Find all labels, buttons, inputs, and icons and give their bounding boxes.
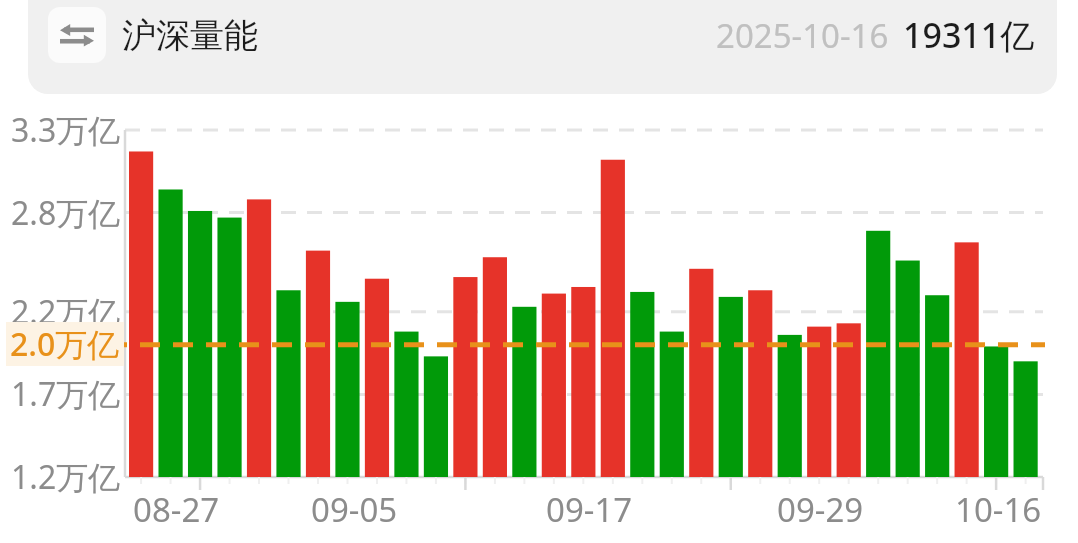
staticText: 19311亿 bbox=[903, 12, 1035, 58]
staticText: 08-27 bbox=[133, 487, 220, 532]
staticText: 2.0万亿 bbox=[10, 322, 120, 366]
staticText: 09-05 bbox=[311, 487, 398, 532]
staticText: 09-29 bbox=[777, 487, 864, 532]
staticText: 沪深量能 bbox=[122, 14, 258, 57]
staticText: 1.7万亿 bbox=[11, 372, 121, 416]
staticText: 2025-10-16 bbox=[716, 13, 889, 58]
staticText: 09-17 bbox=[546, 487, 633, 532]
staticText: 10-16 bbox=[955, 487, 1042, 532]
staticText: 2.2万亿 bbox=[11, 290, 121, 334]
staticText: 3.3万亿 bbox=[11, 108, 121, 152]
button[interactable]: Switch chart bbox=[48, 7, 106, 63]
staticText: 1.2万亿 bbox=[11, 455, 121, 499]
staticText: 2.8万亿 bbox=[11, 191, 121, 235]
button[interactable]: Switch chart bbox=[28, 0, 1057, 94]
